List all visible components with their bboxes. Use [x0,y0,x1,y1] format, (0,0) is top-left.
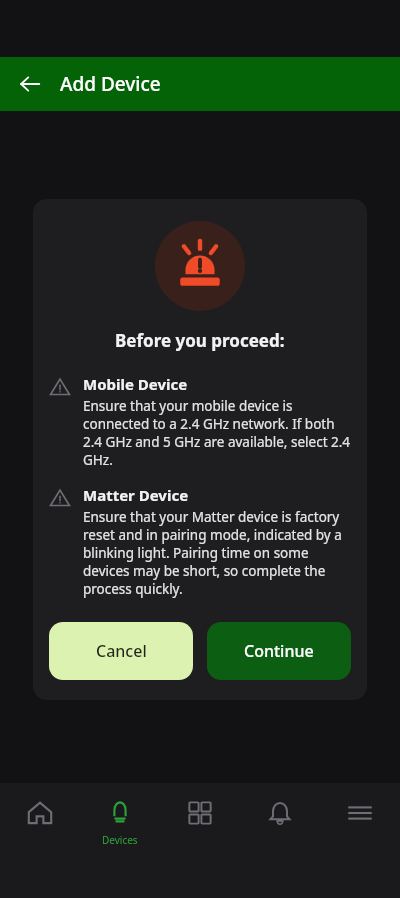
staticText: Mobile Device [83,374,188,394]
staticText: Ensure that your Matter device is factor… [83,508,351,598]
button[interactable]: Notifications [240,783,320,827]
button[interactable]: Devices [80,783,160,847]
button[interactable]: Home [0,783,80,827]
staticText: Add Device [60,71,161,97]
button[interactable]: Menu [320,783,400,827]
button[interactable]: Cancel [49,622,193,680]
button[interactable]: Back [10,64,50,104]
staticText: Ensure that your mobile device is connec… [83,397,351,469]
button[interactable]: Apps [160,783,240,827]
staticText: Continue [244,640,314,662]
button[interactable]: Continue [207,622,351,680]
staticText: Matter Device [83,485,189,505]
staticText: Devices [102,833,138,847]
staticText: Before you proceed: [115,329,285,352]
staticText: Cancel [96,640,147,662]
